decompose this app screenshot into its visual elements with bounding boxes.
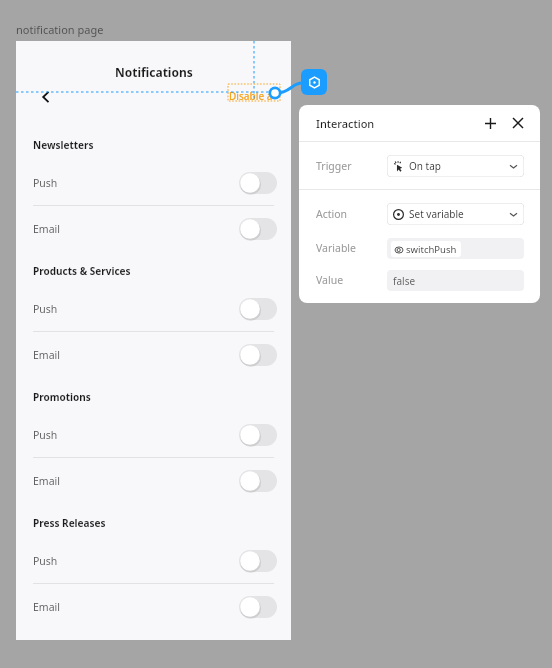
staticText: Press Releases [33, 516, 106, 530]
staticText: Email [33, 222, 60, 236]
button[interactable]: On tap [387, 155, 524, 177]
button[interactable]: Add interaction [480, 113, 500, 133]
button[interactable]: Toggle [239, 596, 277, 618]
staticText: Interaction [316, 116, 375, 131]
button[interactable]: Toggle [239, 550, 277, 572]
button[interactable]: Disable a [229, 85, 273, 107]
button[interactable]: Toggle [239, 424, 277, 446]
staticText: On tap [409, 159, 441, 173]
staticText: switchPush [406, 243, 457, 256]
button[interactable]: false [387, 270, 524, 291]
button[interactable]: Toggle [239, 298, 277, 320]
button[interactable]: Email [16, 458, 291, 503]
button[interactable]: Toggle [239, 172, 277, 194]
button[interactable]: Push [16, 286, 291, 331]
button[interactable]: switchPush [387, 238, 524, 259]
staticText: Action [316, 207, 348, 221]
button[interactable]: Toggle [239, 470, 277, 492]
staticText: Trigger [316, 159, 352, 173]
staticText: Newsletters [33, 138, 94, 152]
button[interactable]: Close [508, 113, 528, 133]
staticText: Value [316, 273, 344, 287]
staticText: Set variable [409, 207, 464, 221]
button[interactable]: Toggle [239, 344, 277, 366]
button[interactable]: Push [16, 538, 291, 583]
staticText: Push [33, 428, 58, 442]
staticText: Email [33, 474, 60, 488]
staticText: Products & Services [33, 264, 131, 278]
staticText: notification page [16, 22, 104, 37]
button[interactable]: Push [16, 412, 291, 457]
staticText: Disable a [229, 89, 273, 103]
button[interactable]: Back [30, 81, 62, 113]
button[interactable]: Email [16, 584, 291, 629]
staticText: Push [33, 176, 58, 190]
staticText: false [393, 274, 416, 288]
staticText: Notifications [115, 64, 193, 80]
button[interactable]: Push [16, 160, 291, 205]
button[interactable]: Email [16, 206, 291, 251]
staticText: Push [33, 302, 58, 316]
button[interactable]: Set variable [387, 203, 524, 225]
staticText: Email [33, 348, 60, 362]
staticText: Promotions [33, 390, 91, 404]
button[interactable]: Interaction node [301, 69, 327, 95]
button[interactable]: Email [16, 332, 291, 377]
staticText: Push [33, 554, 58, 568]
staticText: Variable [316, 241, 357, 255]
staticText: Email [33, 600, 60, 614]
button[interactable]: Toggle [239, 218, 277, 240]
